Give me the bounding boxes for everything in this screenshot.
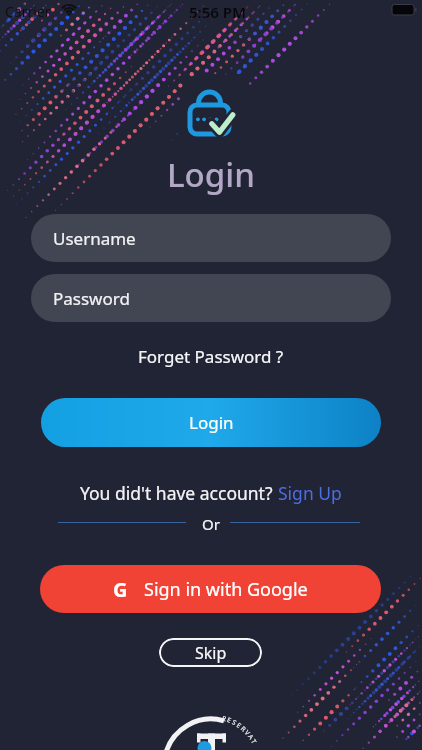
staticText: Skip bbox=[195, 642, 227, 664]
staticText: Login bbox=[167, 152, 255, 197]
staticText: Username bbox=[53, 227, 136, 250]
button[interactable]: Sign Up bbox=[278, 481, 342, 505]
staticText: Sign in with Google bbox=[144, 577, 308, 602]
button[interactable]: Password bbox=[31, 274, 391, 322]
button[interactable]: Skip bbox=[159, 638, 262, 667]
button[interactable]: Forget Password ? bbox=[138, 345, 284, 368]
button[interactable]: Login bbox=[41, 398, 381, 447]
button[interactable]: G bbox=[40, 565, 381, 613]
staticText: Password bbox=[53, 287, 130, 310]
staticText: You did't have account? bbox=[80, 481, 278, 505]
staticText: Login bbox=[189, 411, 234, 434]
staticText: Carrier bbox=[5, 2, 51, 21]
staticText: G bbox=[113, 576, 128, 603]
button[interactable]: Username bbox=[31, 214, 391, 262]
staticText: 5:56 PM bbox=[189, 2, 246, 22]
staticText: Or bbox=[202, 514, 220, 534]
